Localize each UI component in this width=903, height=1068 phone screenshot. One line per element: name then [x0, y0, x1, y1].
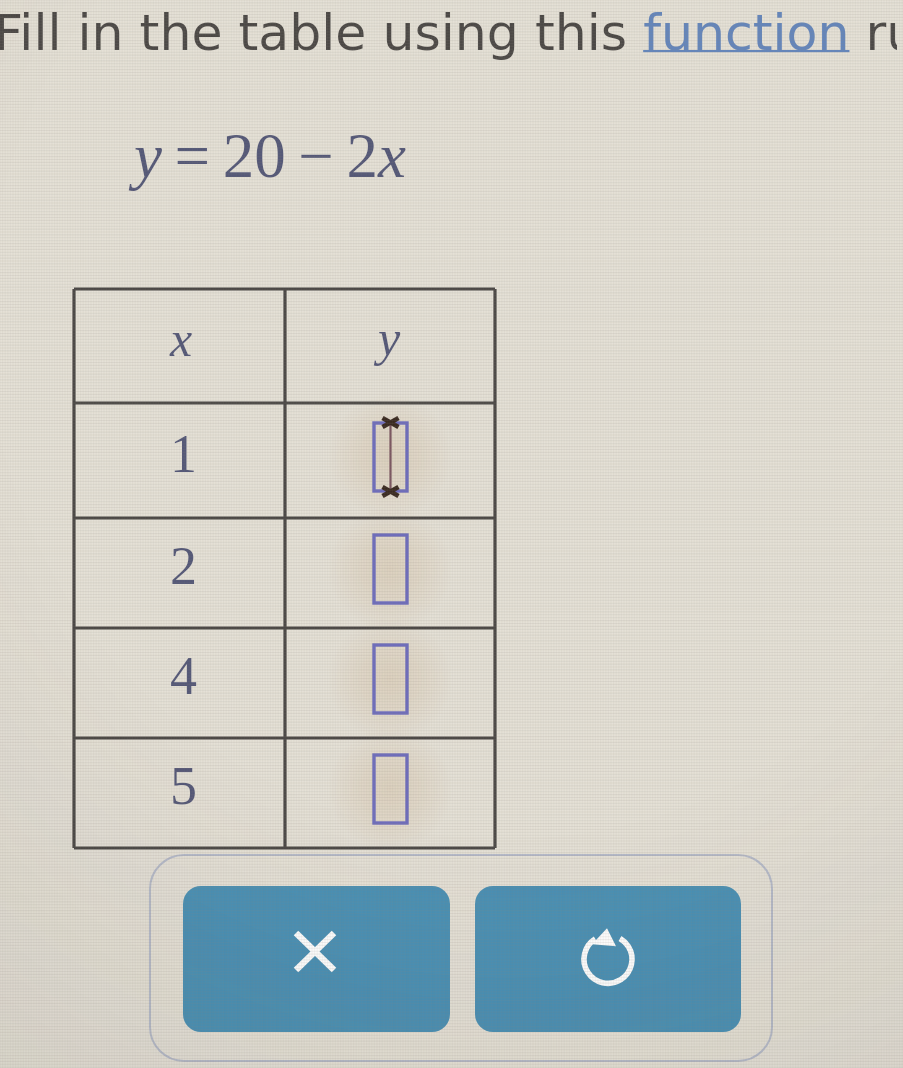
staticText: 1: [170, 424, 197, 484]
button[interactable]: Undo: [475, 886, 741, 1032]
button[interactable]: x: [131, 290, 231, 386]
staticText: y: [378, 310, 401, 365]
staticText: y = 20 − 2x: [134, 121, 406, 191]
staticText: x: [170, 311, 193, 366]
button[interactable]: 4: [133, 628, 233, 724]
button[interactable]: Answer box: [374, 535, 407, 603]
button[interactable]: Answer box: [374, 755, 407, 823]
button[interactable]: Answer box: [374, 423, 407, 491]
staticText: 2: [170, 536, 197, 596]
button[interactable]: Answer box: [374, 645, 407, 713]
button[interactable]: 5: [133, 738, 233, 834]
button[interactable]: Clear: [183, 886, 450, 1032]
staticText: 5: [170, 756, 197, 816]
button[interactable]: 1: [133, 406, 233, 502]
staticText: 4: [170, 646, 197, 706]
button[interactable]: 2: [133, 518, 233, 614]
button[interactable]: y: [339, 289, 439, 385]
staticText: Fill in the table using this function ru: [0, 3, 897, 62]
